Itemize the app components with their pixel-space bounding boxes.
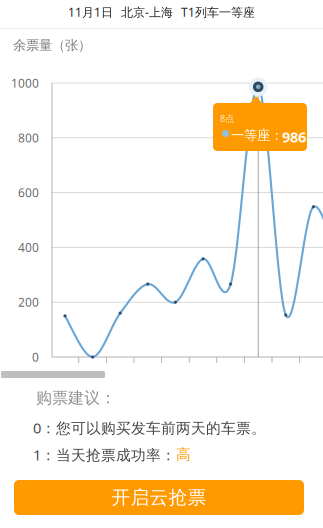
staticText: 购票建议：	[36, 388, 116, 408]
staticText: 200	[18, 294, 39, 310]
staticText: 11月1日 北京-上海 T1列车一等座	[68, 4, 255, 20]
staticText: 800	[18, 130, 39, 146]
staticText: 1000	[11, 75, 39, 91]
staticText: 8点	[220, 112, 234, 124]
staticText: 600	[18, 185, 39, 200]
button[interactable]: 开启云抢票	[14, 480, 304, 515]
staticText: 1：当天抢票成功率：	[33, 445, 176, 464]
staticText: 高	[176, 446, 191, 464]
staticText: 开启云抢票	[111, 486, 206, 509]
staticText: 400	[18, 239, 39, 255]
staticText: 986	[282, 127, 306, 146]
staticText: 余票量（张）	[13, 37, 91, 53]
staticText: 一等座：	[231, 127, 283, 143]
staticText: 0	[32, 349, 39, 365]
staticText: 0：您可以购买发车前两天的车票。	[33, 418, 266, 437]
